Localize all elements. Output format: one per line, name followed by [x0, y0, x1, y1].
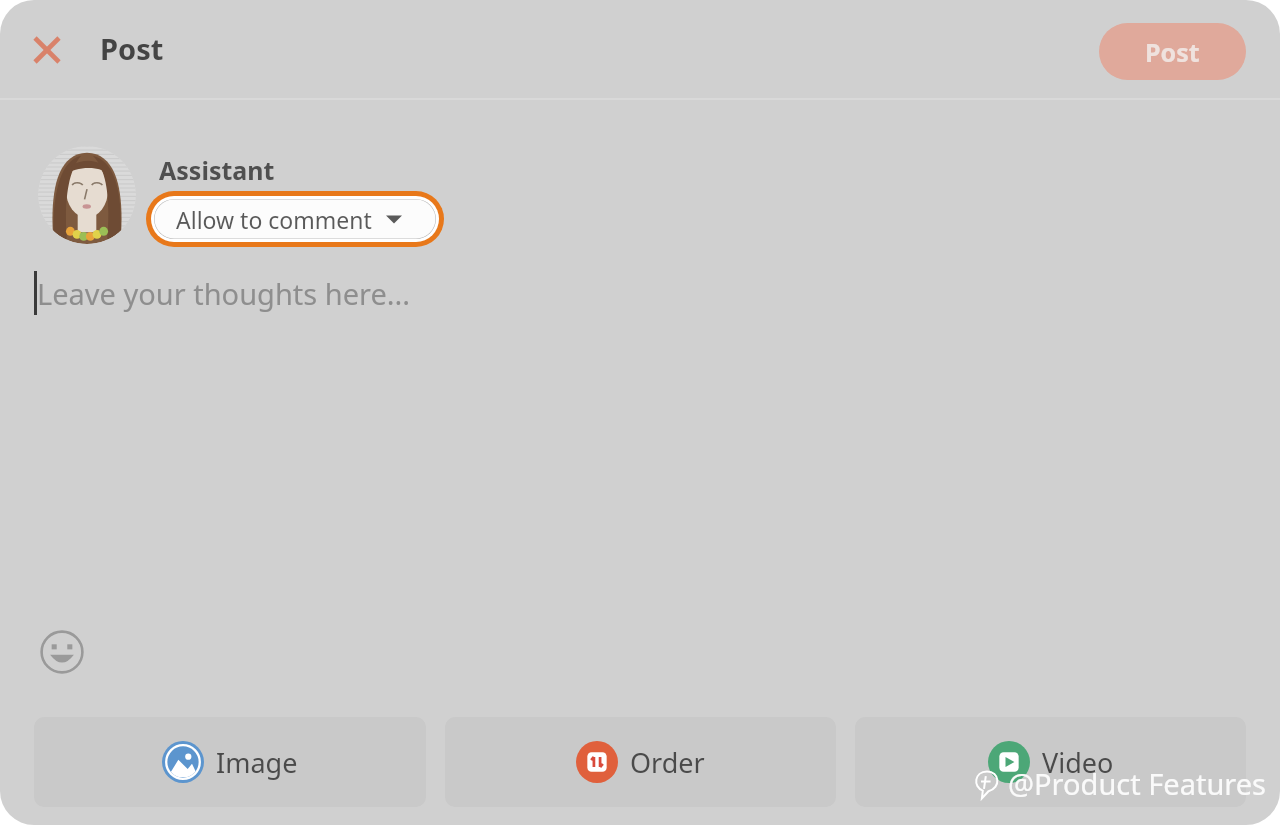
- button[interactable]: Video: [855, 717, 1246, 807]
- button[interactable]: Image: [34, 717, 426, 807]
- staticText: Image: [216, 744, 298, 781]
- staticText: @Product Features: [1008, 764, 1266, 803]
- button[interactable]: Order: [445, 717, 836, 807]
- staticText: Video: [1042, 744, 1114, 781]
- staticText: Post: [100, 29, 164, 68]
- staticText: Order: [630, 744, 705, 781]
- button[interactable]: Leave your thoughts here...: [34, 266, 634, 330]
- staticText: Assistant: [159, 153, 275, 187]
- button[interactable]: Close: [22, 25, 72, 75]
- staticText: Leave your thoughts here...: [37, 274, 411, 313]
- button[interactable]: Emoji: [38, 628, 86, 676]
- button[interactable]: Allow to comment: [154, 199, 436, 239]
- button[interactable]: Profile avatar: [38, 146, 136, 244]
- button[interactable]: Post: [1099, 23, 1246, 80]
- staticText: Post: [1145, 35, 1200, 69]
- staticText: Allow to comment: [176, 204, 372, 235]
